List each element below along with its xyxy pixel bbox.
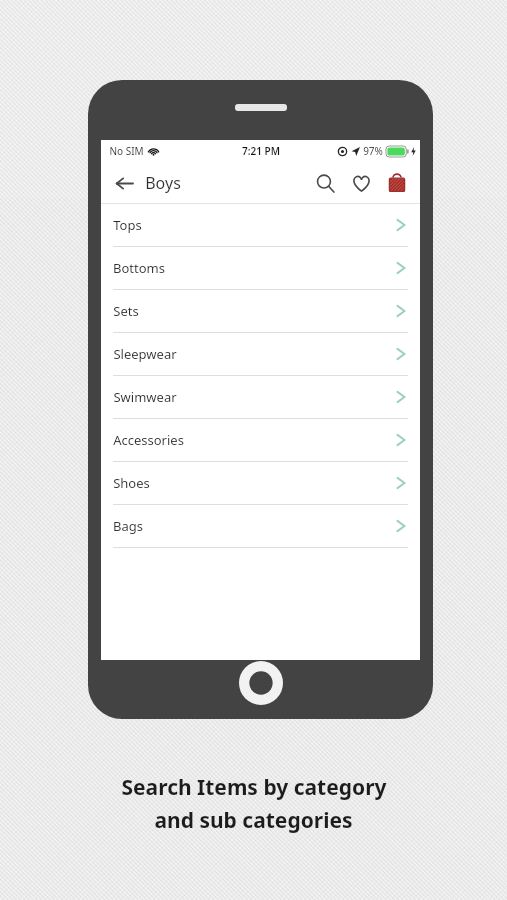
button[interactable]: Shoes: [101, 462, 420, 505]
staticText: Sets: [113, 302, 139, 320]
staticText: Bottoms: [113, 259, 165, 277]
staticText: Search Items by category: [121, 773, 387, 802]
button[interactable]: Bottoms: [101, 247, 420, 290]
button[interactable]: Wishlist: [344, 166, 378, 200]
staticText: 97%: [363, 144, 383, 158]
staticText: Sleepwear: [113, 345, 177, 363]
button[interactable]: Sleepwear: [101, 333, 420, 376]
button[interactable]: Search: [308, 166, 342, 200]
staticText: Tops: [113, 216, 142, 234]
staticText: Boys: [145, 172, 181, 194]
button[interactable]: Sets: [101, 290, 420, 333]
staticText: Bags: [113, 517, 143, 535]
button[interactable]: Accessories: [101, 419, 420, 462]
button[interactable]: Swimwear: [101, 376, 420, 419]
button[interactable]: Back: [109, 168, 139, 198]
button[interactable]: Bags: [101, 505, 420, 548]
staticText: Swimwear: [113, 388, 177, 406]
staticText: and sub categories: [154, 806, 353, 835]
button[interactable]: Shopping bag: [380, 166, 414, 200]
staticText: Shoes: [113, 474, 150, 492]
staticText: No SIM: [109, 144, 144, 158]
button[interactable]: Tops: [101, 204, 420, 247]
staticText: 7:21 PM: [242, 144, 280, 158]
staticText: Accessories: [113, 431, 184, 449]
